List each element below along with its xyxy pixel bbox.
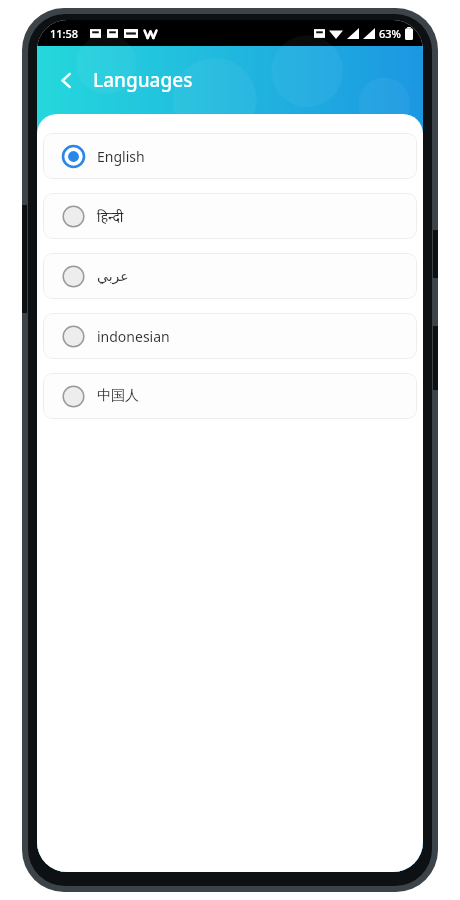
button[interactable]: 中国人	[43, 373, 417, 419]
staticText: عربي	[97, 268, 129, 284]
staticText: English	[97, 147, 145, 166]
button[interactable]: عربي	[43, 253, 417, 299]
staticText: हिन्दी	[97, 207, 124, 226]
staticText: indonesian	[97, 327, 170, 346]
staticText: Languages	[93, 67, 193, 93]
button[interactable]: Back	[47, 61, 85, 99]
staticText: 中国人	[97, 387, 139, 405]
staticText: 11:58	[50, 26, 79, 41]
staticText: 63%	[379, 26, 401, 41]
button[interactable]: indonesian	[43, 313, 417, 359]
button[interactable]: हिन्दी	[43, 193, 417, 239]
button[interactable]: English	[43, 133, 417, 179]
